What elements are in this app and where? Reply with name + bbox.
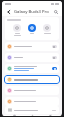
button[interactable]: Toggle: [5, 53, 59, 62]
button[interactable]: Back: [44, 115, 56, 116]
button[interactable]: [5, 106, 59, 114]
button[interactable]: Toggle: [5, 64, 59, 73]
button[interactable]: [5, 86, 59, 95]
button[interactable]: Action: [12, 23, 22, 37]
button[interactable]: Back: [5, 8, 12, 15]
staticText: Galaxy Buds3 Pro: [14, 9, 49, 15]
button[interactable]: Toggle: [5, 42, 59, 51]
button[interactable]: [4, 75, 60, 84]
button[interactable]: [5, 97, 59, 106]
button[interactable]: Toggle: [52, 45, 57, 48]
button[interactable]: Recents: [8, 115, 20, 116]
button[interactable]: Action: [42, 23, 52, 35]
button[interactable]: Home: [26, 115, 38, 116]
button[interactable]: Connected: [27, 23, 37, 35]
button[interactable]: Toggle: [52, 67, 57, 70]
button[interactable]: Search: [52, 8, 59, 15]
button[interactable]: Toggle: [52, 56, 57, 59]
